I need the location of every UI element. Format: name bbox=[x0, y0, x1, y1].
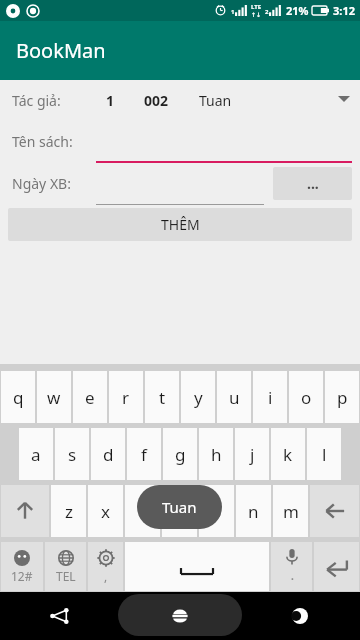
button[interactable]: v bbox=[162, 485, 197, 537]
staticText: 3:12 bbox=[333, 3, 355, 18]
staticText: 002 bbox=[144, 91, 169, 110]
staticText: 12# bbox=[11, 568, 33, 584]
button[interactable]: Choose date bbox=[273, 167, 352, 200]
button[interactable]: , bbox=[88, 542, 123, 591]
staticText: v bbox=[175, 500, 184, 523]
button[interactable]: b bbox=[199, 485, 234, 537]
button[interactable]: y bbox=[181, 371, 215, 423]
button[interactable]: g bbox=[163, 428, 197, 480]
button[interactable]: c bbox=[125, 485, 160, 537]
staticText: h bbox=[211, 443, 222, 466]
staticText: 1 bbox=[231, 8, 235, 16]
button[interactable]: i bbox=[253, 371, 287, 423]
button[interactable]: h bbox=[199, 428, 233, 480]
staticText: 21% bbox=[286, 3, 309, 18]
staticText: TEL bbox=[56, 568, 76, 584]
button[interactable]: d bbox=[91, 428, 125, 480]
staticText: f bbox=[141, 443, 147, 466]
staticText: THÊM bbox=[161, 215, 200, 234]
button[interactable]: Backspace bbox=[310, 485, 359, 537]
staticText: w bbox=[47, 386, 61, 409]
button[interactable]: TEL bbox=[45, 542, 86, 591]
button[interactable]: f bbox=[127, 428, 161, 480]
staticText: i bbox=[268, 386, 273, 409]
staticText: 1 bbox=[106, 91, 115, 110]
button[interactable]: Recents bbox=[240, 592, 360, 640]
staticText: BookMan bbox=[16, 37, 106, 64]
staticText: LTE bbox=[251, 3, 262, 11]
button[interactable]: 12# bbox=[1, 542, 43, 591]
staticText: y bbox=[194, 386, 203, 409]
button[interactable]: Shift bbox=[1, 485, 49, 537]
button[interactable]: Enter bbox=[314, 542, 359, 591]
button[interactable]: x bbox=[88, 485, 123, 537]
button[interactable]: Home bbox=[120, 592, 240, 640]
staticText: · bbox=[291, 572, 294, 586]
button[interactable] bbox=[96, 137, 352, 163]
staticText: t bbox=[159, 386, 166, 409]
staticText: r bbox=[122, 386, 130, 409]
button[interactable]: w bbox=[37, 371, 71, 423]
staticText: ↑↓ bbox=[251, 11, 262, 18]
button[interactable]: THÊM bbox=[8, 208, 352, 241]
button[interactable]: l bbox=[307, 428, 341, 480]
button[interactable] bbox=[96, 179, 264, 205]
button[interactable]: o bbox=[289, 371, 323, 423]
staticText: k bbox=[283, 443, 293, 466]
staticText: Tuan bbox=[162, 497, 197, 517]
button[interactable]: BookMan bbox=[0, 21, 360, 80]
staticText: e bbox=[85, 386, 95, 409]
staticText: , bbox=[104, 568, 108, 584]
button[interactable]: n bbox=[236, 485, 271, 537]
staticText: Tên sách: bbox=[12, 132, 73, 151]
staticText: z bbox=[65, 500, 73, 523]
staticText: l bbox=[322, 443, 327, 466]
staticText: ... bbox=[307, 174, 319, 193]
button[interactable]: Voice input bbox=[271, 542, 312, 591]
button[interactable]: j bbox=[235, 428, 269, 480]
button[interactable]: p bbox=[325, 371, 359, 423]
staticText: u bbox=[229, 386, 240, 409]
button[interactable]: r bbox=[109, 371, 143, 423]
staticText: m bbox=[283, 500, 299, 523]
button[interactable]: Space bbox=[125, 542, 269, 591]
staticText: o bbox=[301, 386, 312, 409]
button[interactable]: Back bbox=[0, 592, 120, 640]
button[interactable]: m bbox=[273, 485, 308, 537]
staticText: Tuan bbox=[199, 91, 232, 110]
staticText: q bbox=[13, 386, 24, 409]
staticText: s bbox=[68, 443, 77, 466]
button[interactable]: z bbox=[51, 485, 86, 537]
staticText: x bbox=[101, 500, 110, 523]
staticText: p bbox=[337, 386, 348, 409]
button[interactable]: e bbox=[73, 371, 107, 423]
staticText: d bbox=[103, 443, 114, 466]
staticText: j bbox=[250, 443, 255, 466]
button[interactable]: Tác giả: bbox=[0, 80, 360, 120]
staticText: Tác giả: bbox=[12, 91, 61, 110]
staticText: 2 bbox=[265, 8, 269, 16]
button[interactable]: u bbox=[217, 371, 251, 423]
staticText: b bbox=[211, 500, 222, 523]
staticText: Ngày XB: bbox=[12, 174, 71, 193]
staticText: g bbox=[175, 443, 186, 466]
button[interactable]: a bbox=[19, 428, 53, 480]
button[interactable]: s bbox=[55, 428, 89, 480]
staticText: c bbox=[138, 500, 147, 523]
staticText: a bbox=[31, 443, 41, 466]
button[interactable]: t bbox=[145, 371, 179, 423]
button[interactable]: q bbox=[1, 371, 35, 423]
staticText: n bbox=[248, 500, 259, 523]
button[interactable]: k bbox=[271, 428, 305, 480]
